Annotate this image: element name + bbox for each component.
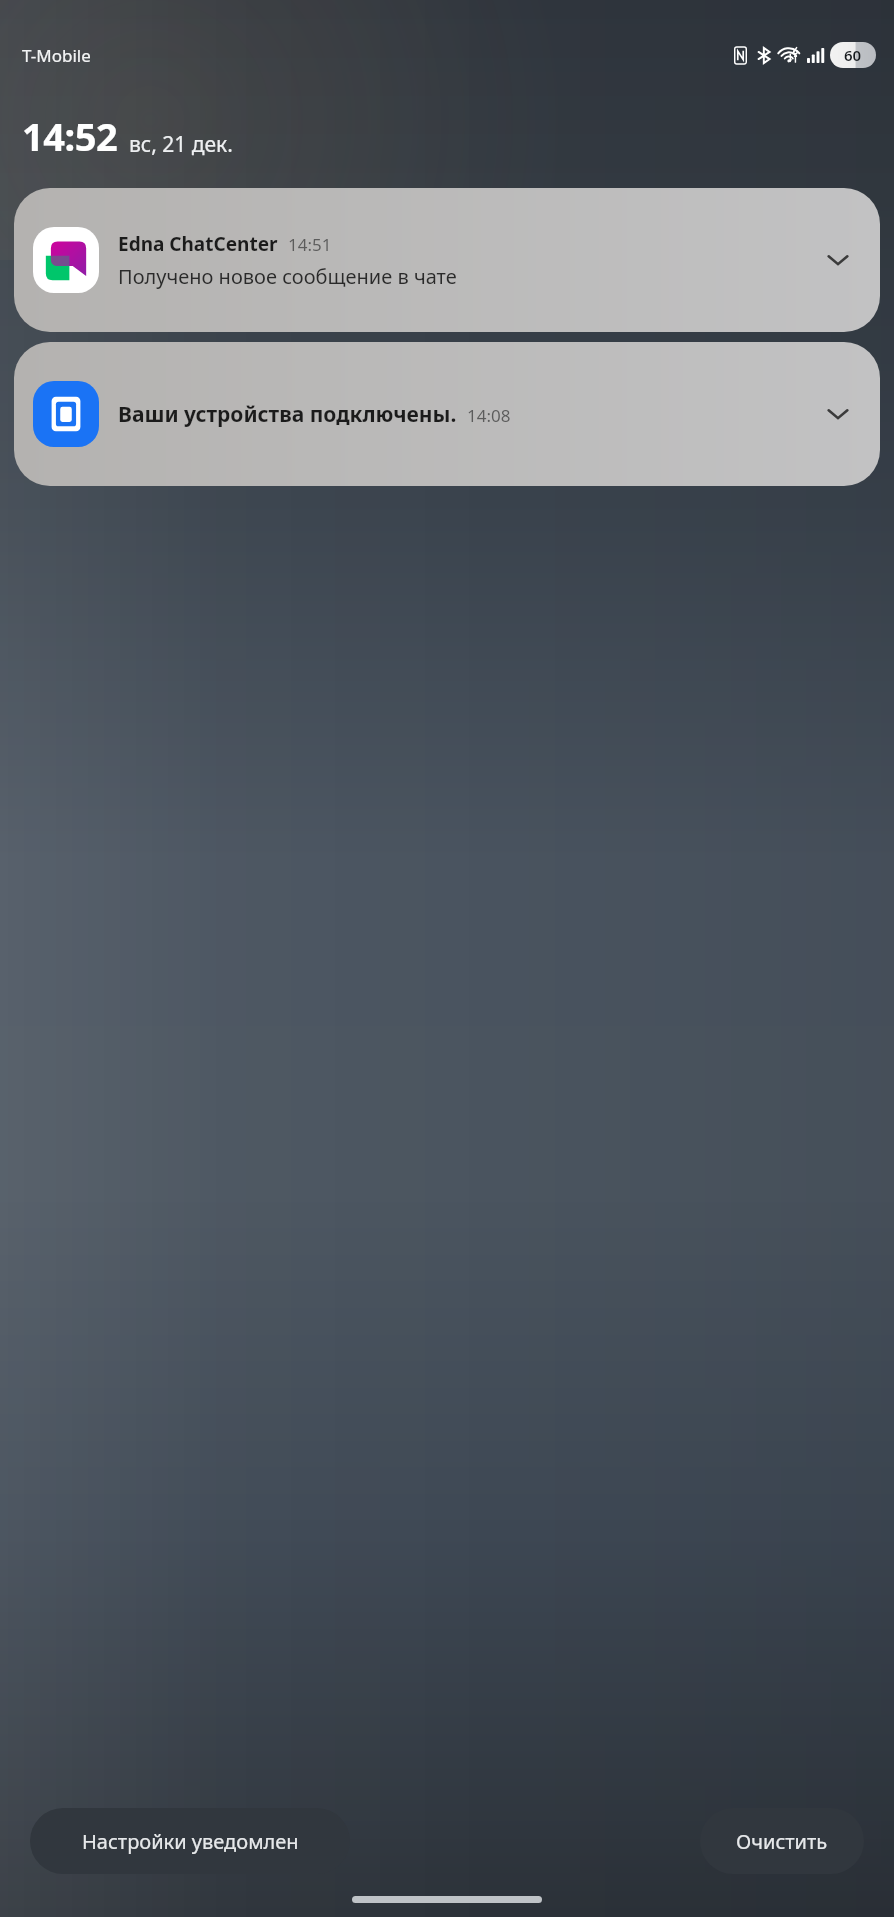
button[interactable]: Очистить (700, 1808, 864, 1874)
staticText: Настройки уведомлен (82, 1828, 299, 1855)
staticText: Получено новое сообщение в чате (118, 263, 457, 290)
staticText: 60 (844, 45, 862, 65)
staticText: 14:52 (22, 110, 118, 162)
button[interactable]: Expand notification (816, 392, 860, 436)
staticText: Ваши устройства подключены. (118, 400, 457, 429)
button[interactable]: Expand notification (816, 238, 860, 282)
button[interactable]: Ваши устройства подключены. (14, 342, 880, 486)
button[interactable]: Настройки уведомлен (30, 1808, 350, 1874)
staticText: вс, 21 дек. (129, 130, 233, 159)
staticText: Очистить (736, 1828, 828, 1855)
staticText: Edna ChatCenter (118, 231, 278, 257)
button[interactable]: Edna ChatCenter (14, 188, 880, 332)
staticText: T-Mobile (22, 44, 91, 67)
staticText: 14:08 (467, 404, 511, 427)
staticText: 14:51 (288, 233, 332, 256)
